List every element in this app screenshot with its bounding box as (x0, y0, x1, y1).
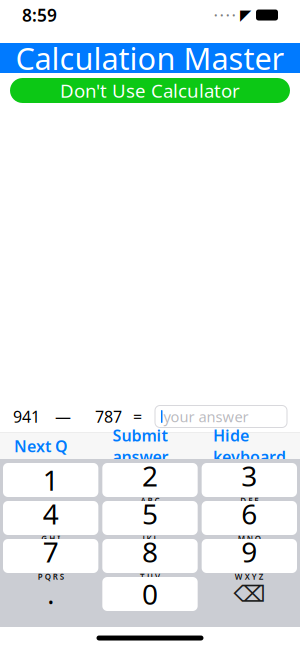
staticText: 4 (43, 495, 59, 532)
button[interactable]: Next Q (6, 430, 76, 462)
staticText: A B C (140, 495, 159, 506)
button[interactable]: Decimal point (3, 577, 98, 611)
button[interactable]: Submit answer (104, 420, 176, 472)
staticText: J K L (142, 533, 157, 544)
staticText: P Q R S (38, 571, 64, 582)
staticText: your answer (163, 407, 248, 426)
staticText: = (133, 406, 142, 427)
staticText: 0 (142, 575, 158, 613)
staticText: 5 (142, 495, 158, 532)
button[interactable]: 4 (3, 501, 98, 535)
staticText: . (47, 576, 54, 612)
staticText: G H I (41, 533, 60, 544)
staticText: 787 (95, 406, 122, 427)
staticText: 7 (43, 533, 59, 570)
button[interactable]: Delete (202, 577, 297, 611)
button[interactable]: 7 (3, 539, 98, 573)
staticText: ⌫ (233, 581, 265, 607)
staticText: 6 (241, 495, 257, 532)
button[interactable]: 2 (102, 463, 198, 497)
staticText: 8:59 (22, 3, 57, 26)
button[interactable]: 8 (102, 539, 198, 573)
staticText: Don't Use Calculator (60, 78, 240, 103)
button[interactable]: Don't Use Calculator (10, 78, 290, 103)
button[interactable]: 3 (202, 463, 297, 497)
staticText: — (55, 406, 71, 427)
button[interactable]: 1 (3, 463, 98, 497)
button[interactable]: 9 (202, 539, 297, 573)
staticText: Submit answer (112, 425, 168, 467)
staticText: M N O (238, 533, 261, 544)
staticText: 3 (241, 457, 257, 494)
staticText: W X Y Z (235, 571, 264, 582)
button[interactable]: 0 (102, 577, 198, 611)
staticText: 2 (142, 457, 158, 494)
staticText: T U V (140, 571, 160, 582)
staticText: 9 (241, 533, 257, 570)
staticText: D E F (240, 495, 258, 506)
staticText: Calculation Master (15, 38, 284, 78)
button[interactable]: Hide keyboard (205, 420, 294, 472)
staticText: Hide keyboard (213, 425, 286, 467)
staticText: ◤ (240, 7, 251, 23)
button[interactable]: 6 (202, 501, 297, 535)
staticText: 8 (142, 533, 158, 570)
staticText: 941 (13, 406, 40, 427)
button[interactable]: 5 (102, 501, 198, 535)
staticText: Next Q (14, 435, 68, 457)
staticText: 1 (43, 461, 59, 499)
staticText: • • • • (214, 9, 236, 21)
